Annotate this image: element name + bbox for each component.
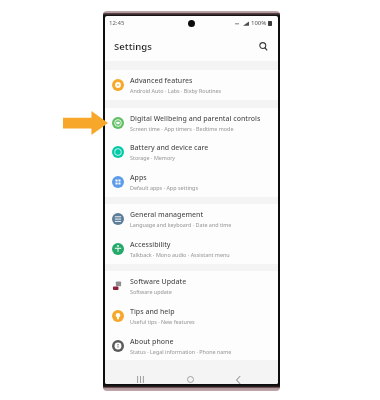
staticText: Settings bbox=[114, 40, 152, 53]
staticText: Android Auto · Labs · Bixby Routines bbox=[130, 87, 222, 94]
staticText: General management bbox=[130, 210, 204, 220]
button[interactable]: Recents bbox=[132, 373, 148, 384]
staticText: Accessibility bbox=[130, 240, 171, 250]
button[interactable]: Tips and help bbox=[105, 301, 278, 331]
staticText: Status · Legal information · Phone name bbox=[130, 348, 232, 355]
staticText: Software Update bbox=[130, 277, 187, 287]
button[interactable]: Accessibility bbox=[105, 234, 278, 264]
staticText: Digital Wellbeing and parental controls bbox=[130, 114, 261, 124]
button[interactable]: General management bbox=[105, 204, 278, 234]
staticText: Storage · Memory bbox=[130, 154, 176, 161]
button[interactable]: Digital Wellbeing and parental controls bbox=[105, 108, 278, 138]
staticText: About phone bbox=[130, 337, 174, 347]
staticText: Useful tips · New features bbox=[130, 318, 195, 325]
button[interactable]: Apps bbox=[105, 167, 278, 197]
button[interactable]: Advanced features bbox=[105, 70, 278, 100]
button[interactable]: Home bbox=[182, 373, 198, 384]
staticText: Talkback · Mono audio · Assistant menu bbox=[130, 251, 230, 258]
staticText: Software update bbox=[130, 288, 172, 295]
staticText: 100% bbox=[251, 19, 267, 27]
staticText: Advanced features bbox=[130, 76, 193, 86]
staticText: Apps bbox=[130, 173, 147, 183]
button[interactable]: About phone bbox=[105, 331, 278, 361]
staticText: Battery and device care bbox=[130, 143, 209, 153]
staticText: Screen time · App timers · Bedtime mode bbox=[130, 125, 234, 132]
button[interactable]: Battery and device care bbox=[105, 137, 278, 167]
button[interactable]: Software Update bbox=[105, 271, 278, 301]
button[interactable]: Search bbox=[257, 40, 270, 53]
staticText: Default apps · App settings bbox=[130, 184, 199, 191]
button[interactable]: Back bbox=[230, 373, 246, 384]
staticText: Language and keyboard · Date and time bbox=[130, 221, 232, 228]
staticText: Tips and help bbox=[130, 307, 175, 317]
staticText: 12:45 bbox=[109, 19, 125, 27]
